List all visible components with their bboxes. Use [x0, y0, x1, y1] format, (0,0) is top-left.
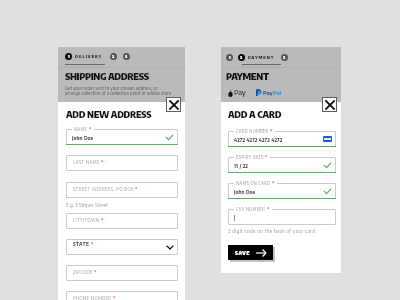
button[interactable]: DELIVERY — [75, 54, 103, 59]
button[interactable]: CITY/TOWN — [66, 213, 178, 229]
staticText: Pay — [234, 87, 246, 97]
button[interactable]: Step 1 — [226, 54, 233, 61]
staticText: E.g. 3 Stripes Street — [66, 202, 109, 208]
button[interactable]: PayPal — [256, 89, 281, 96]
staticText: * — [88, 126, 92, 132]
staticText: * — [134, 186, 138, 192]
staticText: * — [93, 269, 97, 275]
staticText: * — [90, 241, 94, 247]
button[interactable]: Step 1 — [65, 53, 72, 60]
button[interactable]: PHONE NUMBER — [66, 291, 178, 300]
staticText: * — [271, 180, 275, 186]
staticText: CARD NUMBER — [236, 128, 269, 134]
staticText: * — [100, 217, 104, 223]
staticText: 2 — [240, 55, 243, 60]
button[interactable]: SAVE — [228, 245, 273, 260]
staticText: SAVE — [235, 250, 251, 256]
staticText: * — [264, 154, 268, 160]
staticText: * — [112, 295, 116, 300]
staticText: John Doe — [234, 189, 256, 195]
button[interactable]: CVV NUMBER — [228, 209, 336, 225]
staticText: ADD A CARD — [228, 108, 282, 120]
staticText: Get your order sent to your chosen addre… — [65, 85, 172, 97]
button[interactable]: Close — [166, 97, 181, 112]
staticText: 3 — [283, 55, 286, 60]
staticText: PHONE NUMBER — [73, 295, 112, 300]
staticText: EXPIRY DATE — [236, 154, 264, 160]
staticText: NAME ON CARD — [236, 180, 271, 186]
staticText: 1 — [68, 54, 70, 59]
button[interactable]: STREET ADDRESS, PO BOX — [66, 182, 178, 198]
staticText: CITY/TOWN — [73, 217, 100, 223]
staticText: Pay — [263, 89, 273, 96]
staticText: Pal — [273, 89, 281, 96]
staticText: CVV NUMBER — [236, 206, 266, 212]
button[interactable]: PAYMENT — [248, 55, 275, 60]
staticText: SHIPPING ADDRESS — [65, 70, 149, 82]
staticText: * — [269, 128, 273, 134]
staticText: 3 — [125, 54, 128, 59]
button[interactable]: Apple Pay — [228, 87, 246, 97]
staticText: STATE — [73, 241, 90, 247]
staticText: * — [100, 159, 104, 165]
staticText: ADD NEW ADDRESS — [66, 108, 152, 120]
staticText: * — [266, 206, 270, 212]
staticText: 3 digit code on the back of your card — [228, 228, 338, 234]
staticText: ZIPCODE — [73, 269, 93, 275]
button[interactable]: STATE — [66, 239, 178, 255]
button[interactable]: Step 2 — [238, 54, 245, 61]
button[interactable]: 4272 4272 4272 4272 — [228, 131, 336, 147]
button[interactable]: LAST NAME — [66, 155, 178, 171]
button[interactable]: ZIPCODE — [66, 265, 178, 281]
button[interactable]: 11 / 22 — [228, 157, 336, 173]
staticText: 4272 4272 4272 4272 — [234, 137, 283, 143]
staticText: STREET ADDRESS, PO BOX — [73, 186, 134, 192]
button[interactable]: Close — [322, 97, 337, 112]
staticText: John Doe — [72, 135, 94, 141]
staticText: 2 — [112, 54, 115, 59]
staticText: NAME — [74, 126, 88, 132]
button[interactable]: Step 2 — [110, 53, 117, 60]
button[interactable]: John Doe — [66, 129, 178, 145]
staticText: 1 — [229, 55, 231, 60]
button[interactable]: Step 3 — [281, 54, 288, 61]
button[interactable]: John Doe — [228, 183, 336, 199]
staticText: 11 / 22 — [234, 163, 249, 169]
staticText: PAYMENT — [226, 70, 269, 82]
button[interactable]: Step 3 — [123, 53, 130, 60]
staticText: LAST NAME — [73, 159, 100, 165]
